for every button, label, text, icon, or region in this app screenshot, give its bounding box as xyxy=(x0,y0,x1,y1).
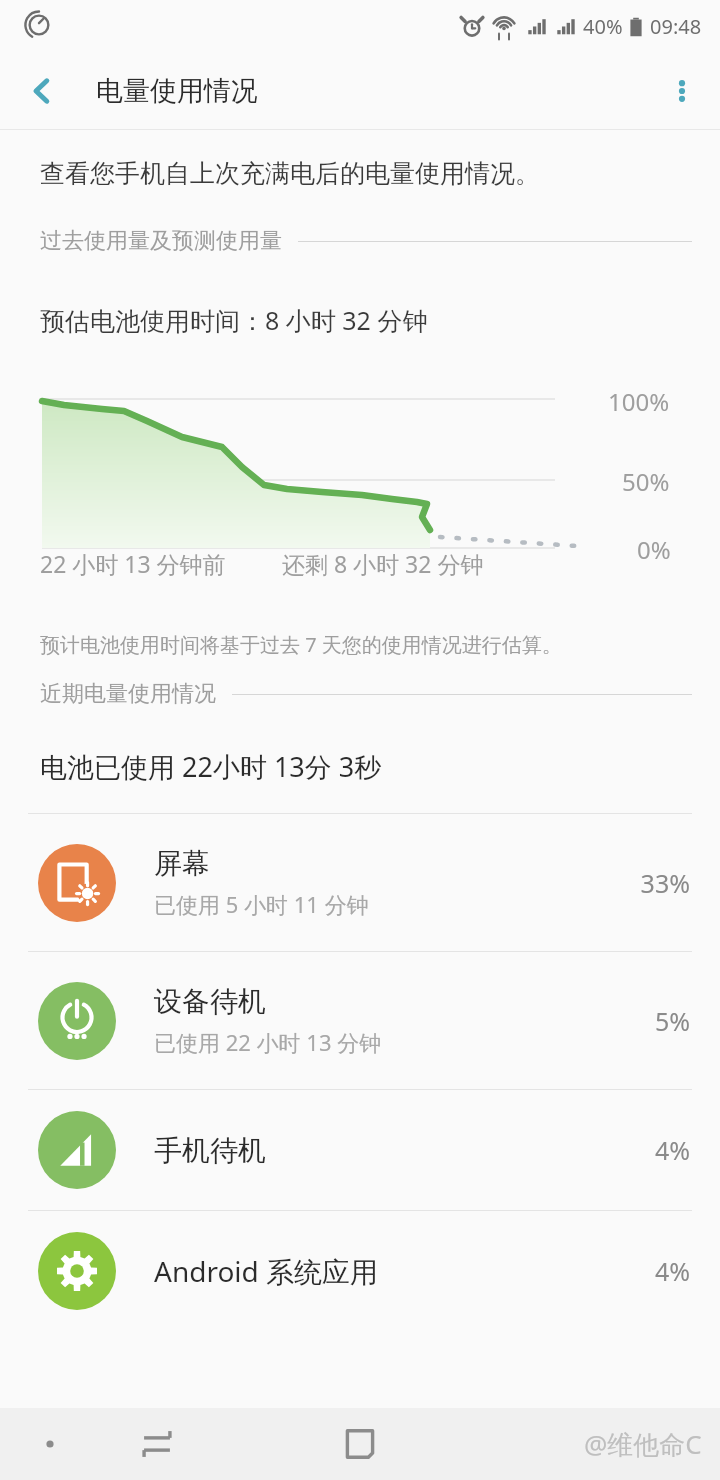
staticText: 33% xyxy=(640,866,690,900)
button[interactable]: Android 系统应用 xyxy=(0,1211,720,1331)
staticText: 50% xyxy=(622,465,670,498)
staticText: 40% xyxy=(583,13,623,40)
button[interactable]: 屏幕 xyxy=(0,814,720,951)
button[interactable]: 手机待机 xyxy=(0,1090,720,1210)
button[interactable]: Recent apps xyxy=(125,1412,189,1476)
staticText: 0% xyxy=(637,533,671,566)
staticText: 近期电量使用情况 xyxy=(40,680,216,708)
staticText: 100% xyxy=(608,385,670,418)
staticText: 4% xyxy=(654,1254,690,1288)
staticText: 过去使用量及预测使用量 xyxy=(40,227,282,255)
button[interactable]: Back xyxy=(14,63,70,119)
staticText: 设备待机 xyxy=(154,984,266,1019)
staticText: 电池已使用 22小时 13分 3秒 xyxy=(40,748,382,785)
staticText: 屏幕 xyxy=(154,846,210,881)
staticText: 5% xyxy=(654,1004,690,1038)
staticText: 4% xyxy=(654,1133,690,1167)
staticText: 手机待机 xyxy=(154,1133,266,1168)
staticText: 09:48 xyxy=(650,13,702,40)
button[interactable]: Home xyxy=(328,1412,392,1476)
button[interactable]: More options xyxy=(654,63,710,119)
staticText: 预估电池使用时间：8 小时 32 分钟 xyxy=(40,303,428,337)
staticText: 已使用 5 小时 11 分钟 xyxy=(154,889,369,919)
staticText: 预计电池使用时间将基于过去 7 天您的使用情况进行估算。 xyxy=(40,631,562,658)
staticText: 查看您手机自上次充满电后的电量使用情况。 xyxy=(40,158,540,189)
staticText: 还剩 8 小时 32 分钟 xyxy=(282,548,484,579)
staticText: 22 小时 13 分钟前 xyxy=(40,548,226,579)
button[interactable]: Menu xyxy=(20,1414,80,1474)
staticText: 已使用 22 小时 13 分钟 xyxy=(154,1027,382,1057)
staticText: Android 系统应用 xyxy=(154,1252,379,1290)
staticText: 电量使用情况 xyxy=(96,74,258,108)
button[interactable]: 设备待机 xyxy=(0,952,720,1089)
staticText: @维他命C xyxy=(584,1426,702,1462)
